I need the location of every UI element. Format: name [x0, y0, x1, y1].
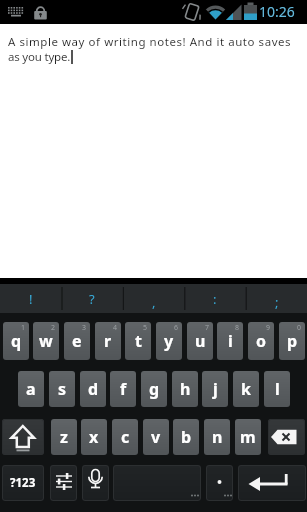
- staticText: ?123: [10, 475, 36, 491]
- button[interactable]: y: [156, 322, 182, 360]
- staticText: c: [121, 426, 130, 448]
- staticText: b: [181, 426, 192, 448]
- button[interactable]: l: [264, 371, 290, 407]
- button[interactable]: [50, 465, 77, 501]
- button[interactable]: w: [33, 322, 59, 360]
- staticText: n: [212, 426, 223, 448]
- staticText: u: [195, 330, 206, 352]
- button[interactable]: f: [110, 371, 136, 407]
- staticText: z: [60, 426, 68, 448]
- staticText: 1: [21, 323, 26, 333]
- staticText: k: [241, 378, 251, 400]
- staticText: f: [120, 378, 127, 400]
- staticText: ;: [275, 293, 279, 311]
- staticText: 7: [205, 323, 210, 333]
- staticText: 8: [235, 323, 240, 333]
- staticText: q: [11, 330, 22, 352]
- staticText: w: [39, 330, 53, 352]
- button[interactable]: d: [80, 371, 106, 407]
- staticText: y: [164, 330, 174, 352]
- button[interactable]: c: [112, 419, 138, 455]
- staticText: 3: [82, 323, 87, 333]
- button[interactable]: r: [95, 322, 121, 360]
- staticText: p: [287, 330, 298, 352]
- staticText: r: [104, 330, 112, 352]
- button[interactable]: e: [64, 322, 90, 360]
- staticText: i: [228, 330, 233, 352]
- button[interactable]: ,: [123, 287, 184, 316]
- staticText: 10:26: [259, 2, 295, 21]
- button[interactable]: ;: [246, 287, 307, 316]
- button[interactable]: g: [141, 371, 167, 407]
- staticText: o: [256, 330, 267, 352]
- button[interactable]: [238, 465, 306, 501]
- button[interactable]: i: [217, 322, 243, 360]
- staticText: a: [26, 378, 36, 400]
- staticText: j: [213, 378, 218, 400]
- button[interactable]: p: [279, 322, 305, 360]
- button[interactable]: q: [3, 322, 29, 360]
- staticText: ,: [152, 293, 156, 311]
- button[interactable]: [206, 465, 233, 501]
- button[interactable]: [82, 465, 109, 501]
- staticText: 4: [113, 323, 118, 333]
- staticText: as you type.: [8, 49, 71, 65]
- button[interactable]: u: [187, 322, 213, 360]
- staticText: 5: [143, 323, 148, 333]
- staticText: h: [180, 378, 191, 400]
- button[interactable]: v: [143, 419, 169, 455]
- button[interactable]: s: [49, 371, 75, 407]
- button[interactable]: k: [233, 371, 259, 407]
- staticText: 2: [51, 323, 56, 333]
- staticText: :: [213, 290, 217, 308]
- staticText: 6: [174, 323, 179, 333]
- button[interactable]: m: [235, 419, 261, 455]
- staticText: e: [72, 330, 82, 352]
- button[interactable]: h: [172, 371, 198, 407]
- staticText: l: [275, 378, 280, 400]
- button[interactable]: o: [248, 322, 274, 360]
- button[interactable]: b: [173, 419, 199, 455]
- button[interactable]: :: [184, 284, 245, 313]
- staticText: 0: [297, 323, 302, 333]
- button[interactable]: ?: [61, 284, 122, 313]
- staticText: 9: [266, 323, 271, 333]
- button[interactable]: n: [204, 419, 230, 455]
- button[interactable]: [268, 419, 305, 455]
- button[interactable]: x: [81, 419, 107, 455]
- button[interactable]: [2, 419, 44, 455]
- staticText: A simple way of writing notes! And it au…: [8, 34, 292, 50]
- button[interactable]: !: [0, 284, 61, 313]
- button[interactable]: a: [18, 371, 44, 407]
- staticText: x: [89, 426, 99, 448]
- staticText: t: [135, 330, 142, 352]
- staticText: v: [151, 426, 161, 448]
- staticText: d: [88, 378, 99, 400]
- button[interactable]: [0, 278, 307, 512]
- button[interactable]: z: [51, 419, 77, 455]
- staticText: g: [149, 378, 160, 400]
- button[interactable]: [113, 465, 201, 501]
- button[interactable]: ?123: [2, 465, 44, 501]
- staticText: ?: [89, 290, 95, 308]
- button[interactable]: j: [202, 371, 228, 407]
- staticText: s: [58, 378, 67, 400]
- staticText: m: [240, 426, 256, 448]
- staticText: !: [29, 290, 33, 308]
- button[interactable]: t: [125, 322, 151, 360]
